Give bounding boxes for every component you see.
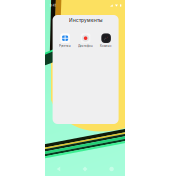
button[interactable]: Рулетка — [57, 32, 74, 48]
staticText: 9:41 — [49, 3, 55, 8]
staticText: Инструменты — [69, 18, 102, 23]
button[interactable]: Диктофон — [77, 32, 94, 48]
staticText: Рулетка — [59, 44, 71, 48]
button[interactable]: Home — [72, 162, 98, 176]
button[interactable]: Компас — [98, 32, 115, 48]
button[interactable]: Back — [45, 162, 72, 176]
button[interactable]: Recents — [98, 162, 125, 176]
staticText: Диктофон — [78, 44, 93, 48]
staticText: Компас — [100, 44, 112, 48]
